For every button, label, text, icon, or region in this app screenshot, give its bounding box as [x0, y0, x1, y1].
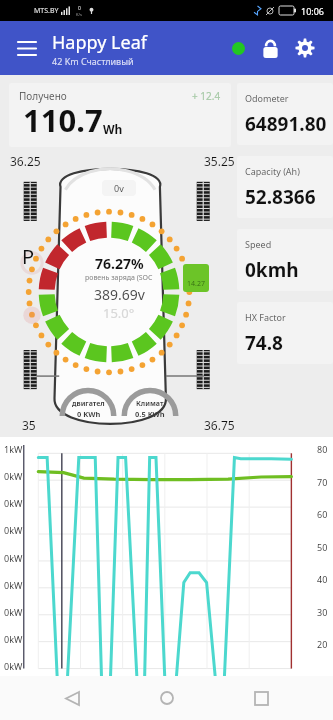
- staticText: Климат: [136, 399, 164, 409]
- staticText: 0kW: [4, 633, 23, 645]
- staticText: 10:06: [301, 5, 325, 17]
- staticText: K/s: [76, 12, 82, 17]
- button[interactable]: HX Factor: [237, 302, 333, 364]
- staticText: 64891.80: [245, 111, 327, 137]
- staticText: 60: [317, 508, 328, 520]
- button[interactable]: Home: [144, 676, 190, 720]
- staticText: 76.27%: [95, 254, 144, 273]
- staticText: 0v: [114, 182, 124, 194]
- button[interactable]: Speed: [237, 229, 333, 291]
- staticText: 50: [317, 541, 328, 553]
- staticText: Получено: [19, 89, 67, 103]
- button[interactable]: Back: [49, 676, 95, 720]
- staticText: 389.69v: [94, 285, 145, 304]
- staticText: 0: [78, 5, 81, 12]
- staticText: 0kmh: [245, 257, 299, 283]
- staticText: Happy Leaf: [52, 30, 147, 55]
- button[interactable]: Open navigation menu: [10, 31, 44, 65]
- staticText: Speed: [245, 238, 272, 250]
- button[interactable]: Recent apps: [238, 676, 284, 720]
- staticText: 110.7: [23, 99, 103, 141]
- staticText: + 12.4: [192, 89, 221, 103]
- staticText: 20: [317, 638, 328, 650]
- staticText: 1kW: [4, 443, 23, 455]
- button[interactable]: Получено: [9, 83, 231, 147]
- staticText: 0kW: [4, 524, 23, 536]
- staticText: 14.27: [187, 279, 205, 289]
- staticText: 35: [22, 417, 36, 433]
- staticText: двигател: [72, 399, 105, 409]
- staticText: 52.8366: [245, 184, 316, 210]
- staticText: 0kW: [4, 660, 23, 672]
- staticText: HX Factor: [245, 311, 286, 323]
- staticText: 40: [317, 573, 328, 585]
- staticText: 0kW: [4, 579, 23, 591]
- staticText: 80: [317, 443, 328, 455]
- staticText: 0kW: [4, 606, 23, 618]
- staticText: 36.25: [10, 153, 41, 169]
- staticText: 0 KWh: [77, 409, 101, 419]
- button[interactable]: Odometer: [237, 83, 333, 145]
- staticText: 74.8: [245, 330, 283, 356]
- button[interactable]: Capacity (Ah): [237, 156, 333, 218]
- staticText: 30: [317, 606, 328, 618]
- staticText: MTS.BY: [34, 6, 59, 16]
- staticText: 36.75: [204, 417, 235, 433]
- staticText: Wh: [103, 121, 123, 137]
- staticText: 0kW: [4, 552, 23, 564]
- button[interactable]: Settings: [287, 30, 323, 66]
- button[interactable]: Lock: [253, 31, 287, 65]
- staticText: 0kW: [4, 497, 23, 509]
- staticText: 42 Km Счастливый: [52, 55, 134, 67]
- staticText: Capacity (Ah): [245, 165, 300, 177]
- staticText: Odometer: [245, 92, 289, 104]
- staticText: 15.0°: [103, 304, 135, 322]
- staticText: 35.25: [204, 153, 235, 169]
- staticText: 70: [317, 476, 328, 488]
- staticText: ровень заряда (SOC: [85, 273, 153, 283]
- staticText: P: [22, 243, 35, 270]
- staticText: 0.5 KWh: [135, 409, 165, 419]
- staticText: 0kW: [4, 470, 23, 482]
- button[interactable]: Connection status: [223, 33, 253, 63]
